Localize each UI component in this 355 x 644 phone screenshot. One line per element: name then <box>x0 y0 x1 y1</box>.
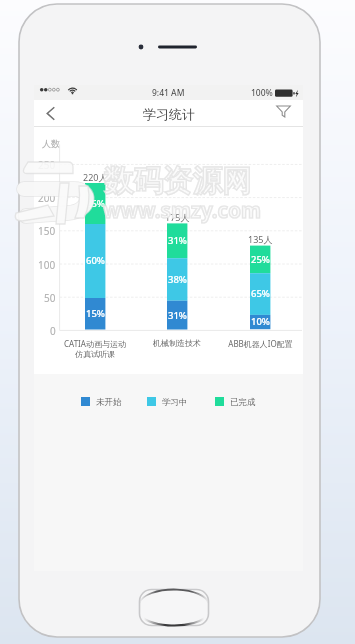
button[interactable]: Home <box>139 589 209 626</box>
button[interactable]: 已完成 <box>215 397 256 406</box>
staticText: ABB机器人IO配置 <box>228 338 293 349</box>
staticText: 60% <box>86 254 105 267</box>
staticText: 10% <box>251 315 270 328</box>
staticText: 250 <box>38 158 56 172</box>
staticText: 人数 <box>42 138 60 149</box>
staticText: 65% <box>251 287 270 300</box>
button[interactable]: Back <box>34 100 68 127</box>
staticText: 200 <box>38 191 56 205</box>
staticText: 150 <box>38 224 56 238</box>
staticText: 31% <box>168 234 187 247</box>
staticText: 0 <box>50 324 56 338</box>
staticText: 数码资源网 <box>104 163 252 200</box>
staticText: 175人 <box>165 211 190 223</box>
staticText: 机械制造技术 <box>153 338 201 348</box>
staticText: 220人 <box>83 171 108 183</box>
button[interactable]: Filter <box>271 100 303 127</box>
staticText: 38% <box>168 273 187 286</box>
staticText: 25% <box>251 253 270 266</box>
staticText: 31% <box>168 309 187 322</box>
staticText: 已完成 <box>230 397 256 406</box>
staticText: 100 <box>38 258 56 272</box>
staticText: 100% <box>251 87 273 99</box>
staticText: www.smzy.com <box>103 196 261 224</box>
staticText: 学习中 <box>162 397 188 406</box>
staticText: 9:41 AM <box>152 87 185 99</box>
staticText: 50 <box>44 291 56 305</box>
staticText: 数码资源网 <box>104 163 252 200</box>
staticText: 25% <box>86 197 105 210</box>
button[interactable]: 学习中 <box>147 397 188 406</box>
staticText: www.smzy.com <box>103 196 261 224</box>
button[interactable]: 未开始 <box>81 397 122 406</box>
staticText: 学习统计 <box>143 106 195 122</box>
staticText: 15% <box>86 307 105 320</box>
staticText: CATIA动画与运动 仿真试听课 <box>64 338 126 360</box>
staticText: 未开始 <box>96 397 122 406</box>
staticText: 135人 <box>248 233 273 245</box>
